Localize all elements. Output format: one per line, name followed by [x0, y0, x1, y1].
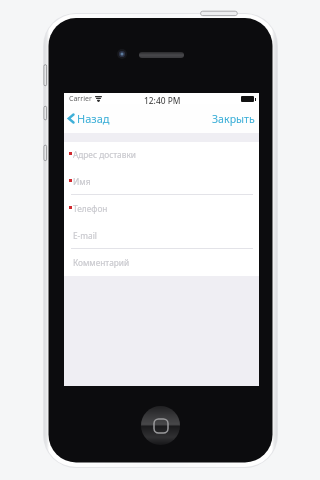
- button[interactable]: E-mail: [64, 223, 259, 250]
- staticText: Имя: [73, 176, 91, 187]
- button[interactable]: Назад: [64, 106, 116, 131]
- staticText: Адрес доставки: [73, 149, 136, 160]
- staticText: Телефон: [73, 203, 108, 214]
- staticText: Комментарий: [73, 257, 130, 268]
- button[interactable]: Закрыть: [207, 107, 259, 131]
- button[interactable]: Имя: [64, 169, 259, 196]
- button[interactable]: Комментарий: [64, 250, 259, 276]
- staticText: Назад: [77, 111, 110, 126]
- staticText: 12:40 PM: [144, 95, 181, 106]
- button[interactable]: Home: [141, 406, 180, 445]
- staticText: Закрыть: [212, 112, 255, 126]
- staticText: E-mail: [73, 230, 97, 241]
- button[interactable]: Телефон: [64, 196, 259, 223]
- button[interactable]: Адрес доставки: [64, 142, 259, 169]
- staticText: Carrier: [69, 94, 92, 104]
